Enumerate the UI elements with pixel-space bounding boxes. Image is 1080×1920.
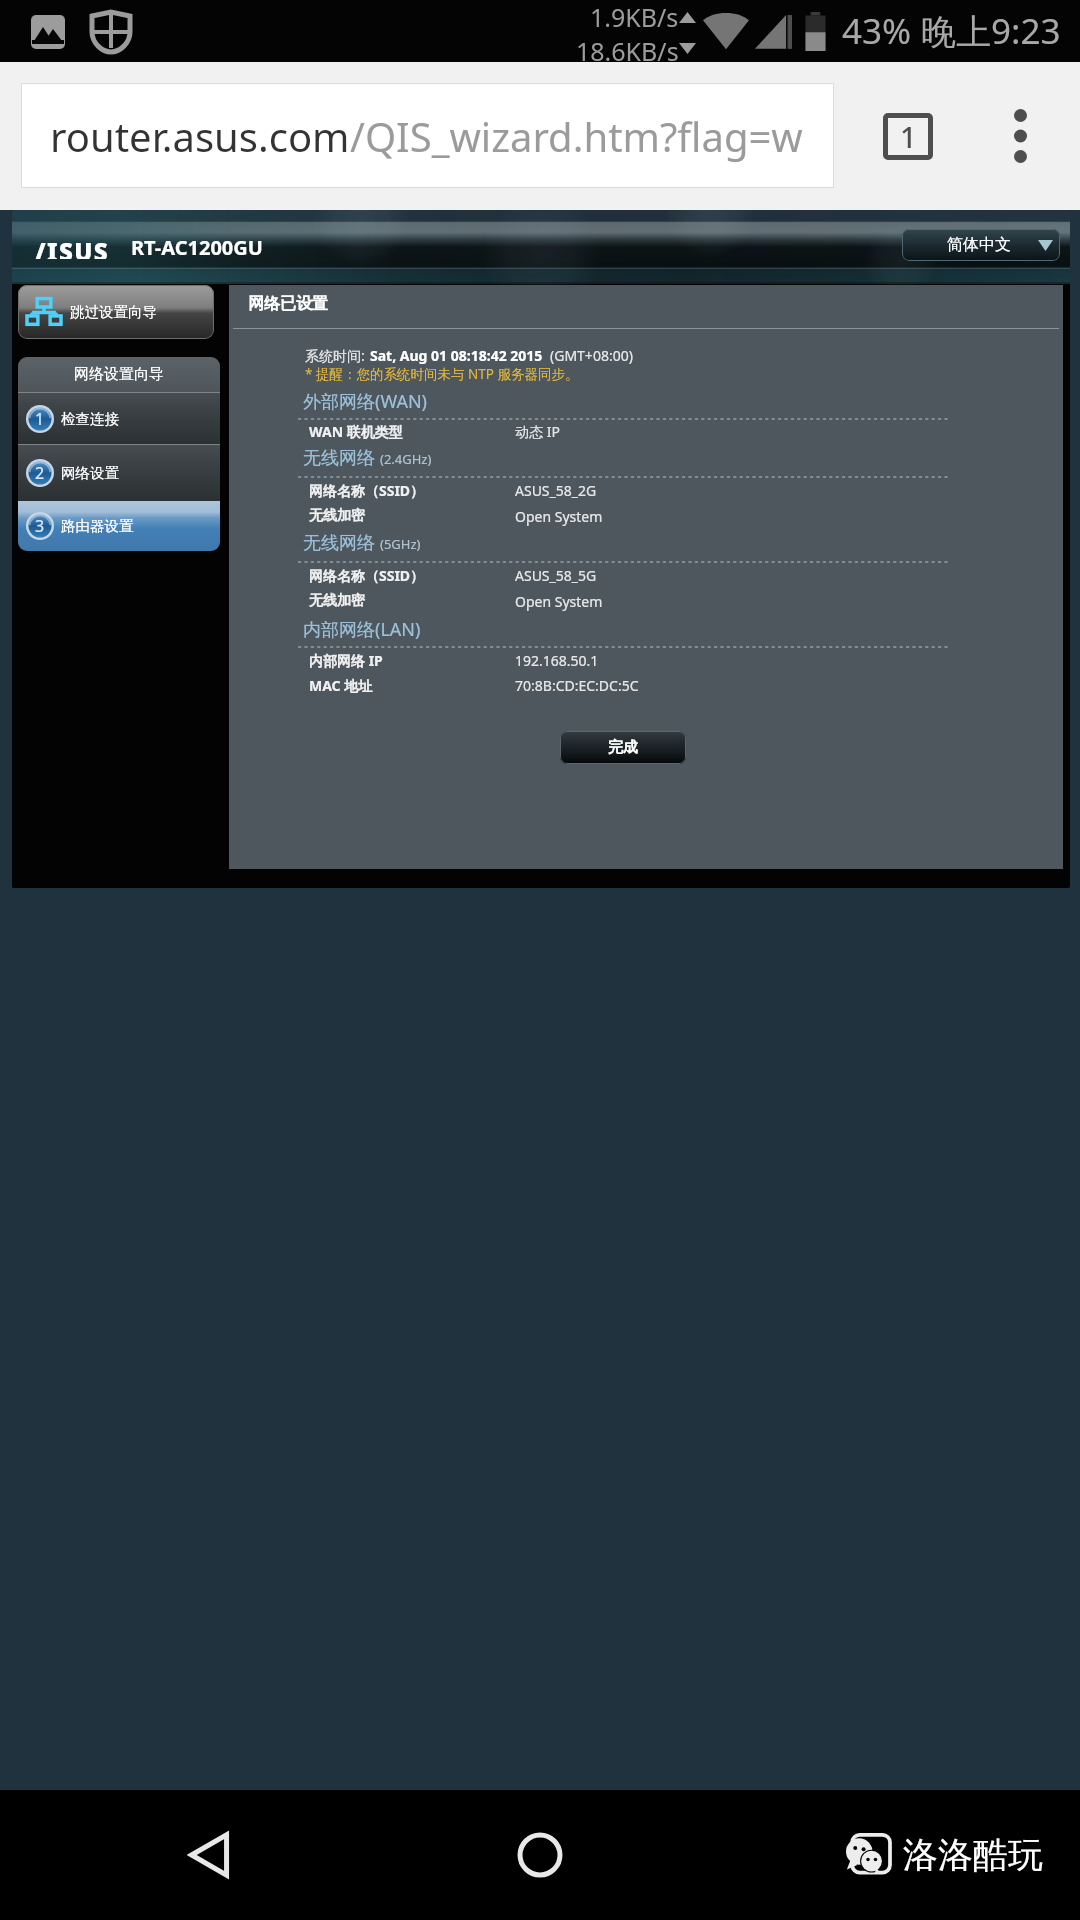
staticText: (GMT+08:00) — [550, 346, 633, 365]
button[interactable]: 3 — [18, 501, 220, 551]
button[interactable]: 简体中文 — [902, 229, 1060, 261]
staticText: 网络名称（SSID） — [309, 566, 425, 585]
staticText: /ISUS — [35, 235, 110, 259]
staticText: ASUS_58_2G — [515, 481, 597, 500]
button[interactable]: Back — [170, 1815, 250, 1895]
staticText: 检查连接 — [61, 410, 119, 428]
staticText: /QIS_wizard.htm?flag=w — [350, 109, 803, 163]
button[interactable]: More options — [980, 96, 1060, 176]
staticText: 洛洛酷玩 — [903, 1833, 1043, 1877]
staticText: 简体中文 — [947, 235, 1011, 255]
staticText: Sat, Aug 01 08:18:42 2015 — [370, 346, 543, 365]
staticText: 内部网络 IP — [309, 651, 383, 670]
staticText: WAN 联机类型 — [309, 422, 403, 441]
staticText: 2 — [35, 462, 45, 484]
staticText: 晚上9:23 — [921, 7, 1061, 55]
button[interactable]: Tabs — [870, 100, 946, 172]
staticText: 完成 — [608, 738, 638, 757]
staticText: 路由器设置 — [61, 517, 134, 535]
staticText: 1.9KB/s — [590, 0, 679, 34]
staticText: 无线加密 — [309, 592, 365, 610]
staticText: * 提醒：您的系统时间未与 NTP 服务器同步。 — [305, 365, 579, 383]
staticText: Open System — [515, 592, 603, 611]
staticText: (2.4GHz) — [380, 450, 432, 468]
staticText: 无线加密 — [309, 507, 365, 525]
button[interactable]: 2 — [18, 445, 220, 501]
staticText: 70:8B:CD:EC:DC:5C — [515, 676, 639, 695]
button[interactable]: 完成 — [560, 731, 686, 764]
staticText: ASUS_58_5G — [515, 566, 597, 585]
staticText: Open System — [515, 507, 603, 526]
staticText: 无线网络 — [303, 532, 375, 555]
staticText: 43% — [842, 7, 912, 55]
button[interactable]: router.asus.com — [21, 83, 834, 188]
staticText: 网络设置 — [61, 464, 119, 482]
staticText: 网络设置向导 — [74, 365, 164, 384]
staticText: 系统时间: — [305, 346, 365, 365]
staticText: 网络名称（SSID） — [309, 481, 425, 500]
button[interactable]: Home — [500, 1815, 580, 1895]
staticText: MAC 地址 — [309, 676, 373, 695]
staticText: RT-AC1200GU — [131, 234, 263, 261]
staticText: 网络已设置 — [248, 294, 328, 314]
button[interactable]: 跳过设置向导 — [18, 285, 214, 339]
staticText: 外部网络(WAN) — [303, 389, 428, 414]
staticText: (5GHz) — [380, 535, 421, 553]
staticText: 1 — [900, 117, 917, 156]
button[interactable]: 1 — [18, 393, 220, 444]
staticText: 无线网络 — [303, 447, 375, 470]
staticText: 3 — [35, 515, 45, 537]
staticText: 内部网络(LAN) — [303, 617, 421, 642]
staticText: 动态 IP — [515, 422, 560, 441]
staticText: 跳过设置向导 — [70, 303, 157, 321]
staticText: 1 — [35, 408, 45, 430]
staticText: router.asus.com — [50, 109, 350, 163]
staticText: 192.168.50.1 — [515, 651, 599, 670]
staticText: 18.6KB/s — [576, 34, 679, 62]
